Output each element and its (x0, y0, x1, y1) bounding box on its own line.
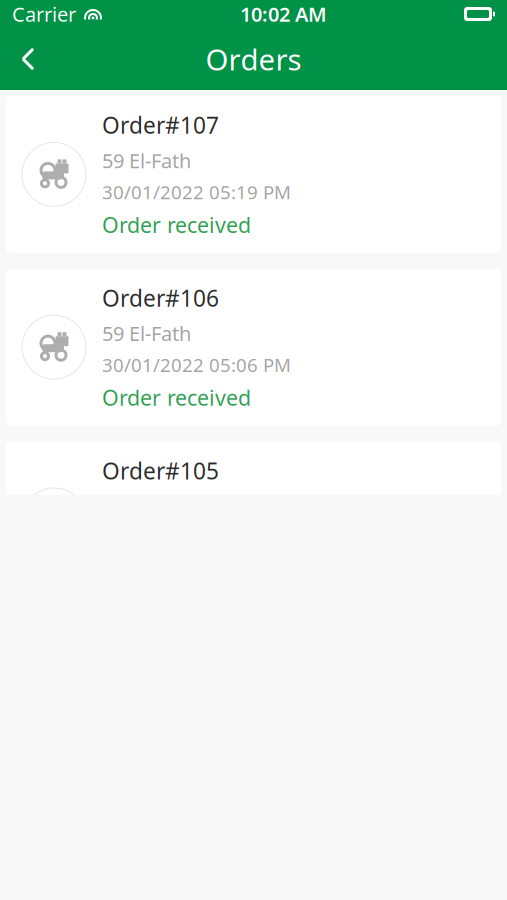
staticText: 10:02 AM (240, 1, 327, 27)
button[interactable]: Order#107 (6, 96, 501, 253)
staticText: 30/01/2022 05:19 PM (102, 180, 291, 204)
staticText: Order#105 (102, 456, 219, 486)
staticText: 30/01/2022 05:06 PM (102, 352, 291, 377)
staticText: 59 El-Fath (102, 320, 191, 346)
staticText: Orders (205, 39, 301, 78)
button[interactable]: Order#106 (6, 269, 501, 426)
button[interactable]: Order#105 (6, 442, 501, 598)
staticText: Order#106 (102, 283, 219, 313)
staticText: Order received (102, 383, 251, 411)
staticText: Order received (102, 210, 251, 239)
staticText: Carrier (12, 1, 76, 27)
button[interactable]: Back (6, 37, 50, 81)
staticText: Order#107 (102, 110, 219, 140)
staticText: 59 El-Fath (102, 147, 191, 174)
